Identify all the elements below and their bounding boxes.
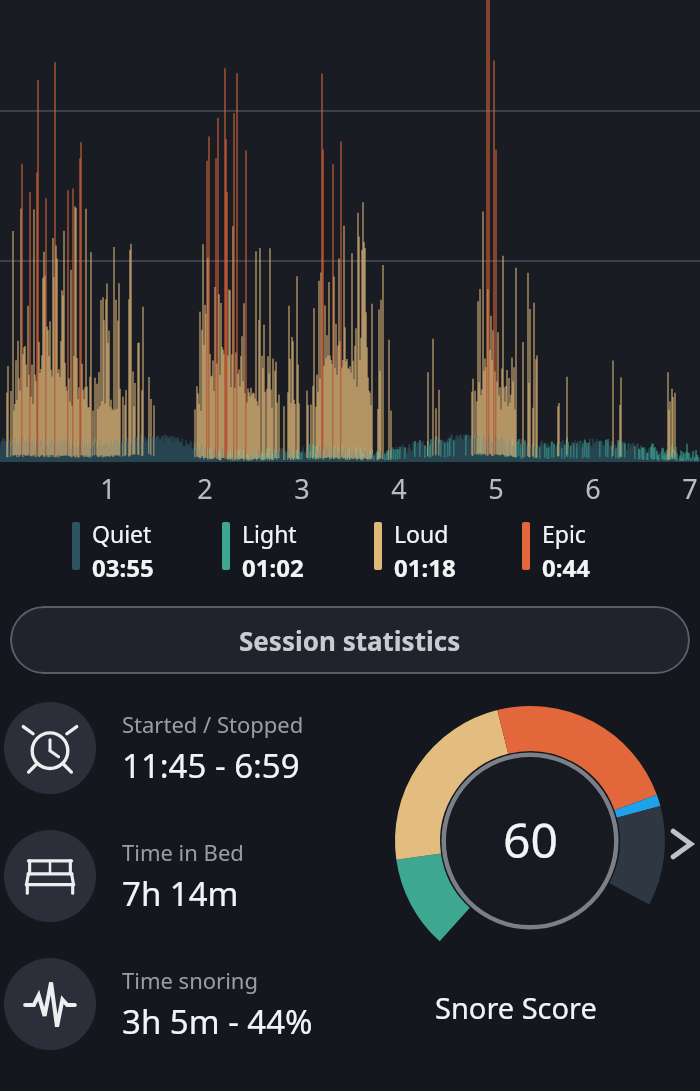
staticText: Time snoring bbox=[122, 965, 258, 995]
staticText: Loud bbox=[394, 518, 449, 549]
staticText: Session statistics bbox=[239, 623, 461, 658]
button[interactable]: Next bbox=[662, 824, 700, 864]
staticText: 01:02 bbox=[242, 551, 304, 584]
staticText: Time in Bed bbox=[122, 837, 244, 867]
staticText: 7h 14m bbox=[122, 871, 239, 916]
button[interactable]: Session statistics bbox=[10, 606, 690, 674]
staticText: 03:55 bbox=[92, 551, 154, 584]
staticText: 4 bbox=[379, 470, 419, 504]
staticText: 2 bbox=[185, 470, 225, 504]
staticText: 1 bbox=[88, 470, 128, 504]
staticText: Started / Stopped bbox=[122, 709, 304, 739]
staticText: 0:44 bbox=[542, 551, 590, 584]
button[interactable]: Time snoring bbox=[0, 956, 700, 1052]
staticText: 01:18 bbox=[394, 551, 456, 584]
button[interactable]: Started / Stopped bbox=[0, 700, 700, 796]
staticText: 3h 5m - 44% bbox=[122, 999, 313, 1044]
staticText: 3 bbox=[282, 470, 322, 504]
staticText: Light bbox=[242, 518, 297, 549]
button[interactable]: Snore Score details bbox=[395, 706, 665, 976]
staticText: 60 bbox=[503, 807, 558, 872]
staticText: Quiet bbox=[92, 518, 152, 549]
staticText: 5 bbox=[476, 470, 516, 504]
staticText: Epic bbox=[542, 518, 586, 549]
staticText: 6 bbox=[573, 470, 613, 504]
staticText: 7 bbox=[670, 470, 700, 504]
staticText: Snore Score bbox=[435, 988, 597, 1027]
staticText: 11:45 - 6:59 bbox=[122, 743, 300, 788]
button[interactable]: Time in Bed bbox=[0, 828, 700, 924]
